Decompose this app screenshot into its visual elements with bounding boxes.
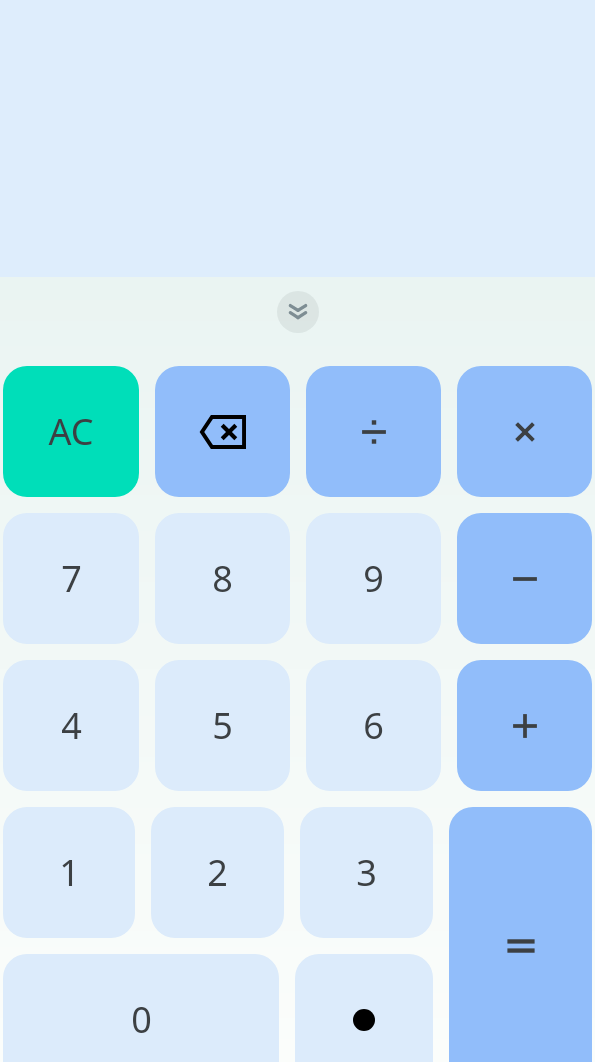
- button[interactable]: 2: [151, 807, 284, 938]
- button[interactable]: Decimal point: [295, 954, 433, 1062]
- staticText: 4: [61, 701, 82, 750]
- staticText: 5: [212, 701, 233, 750]
- staticText: 3: [356, 848, 377, 897]
- button[interactable]: Divide: [306, 366, 441, 497]
- button[interactable]: Expand history: [277, 291, 319, 333]
- staticText: 8: [212, 554, 233, 603]
- button[interactable]: 0: [3, 954, 279, 1062]
- button[interactable]: 9: [306, 513, 441, 644]
- button[interactable]: Multiply: [457, 366, 592, 497]
- button[interactable]: Backspace: [155, 366, 290, 497]
- staticText: 9: [363, 554, 384, 603]
- staticText: 2: [207, 848, 228, 897]
- button[interactable]: Plus: [457, 660, 592, 791]
- staticText: 6: [363, 701, 384, 750]
- button[interactable]: 8: [155, 513, 290, 644]
- staticText: 1: [59, 848, 80, 897]
- button[interactable]: 6: [306, 660, 441, 791]
- button[interactable]: Equals: [449, 807, 592, 1062]
- staticText: 0: [131, 995, 152, 1044]
- button[interactable]: 1: [3, 807, 135, 938]
- staticText: 7: [61, 554, 82, 603]
- button[interactable]: 4: [3, 660, 139, 791]
- button[interactable]: AC: [3, 366, 139, 497]
- button[interactable]: 7: [3, 513, 139, 644]
- staticText: AC: [48, 407, 94, 456]
- button[interactable]: 5: [155, 660, 290, 791]
- button[interactable]: Minus: [457, 513, 592, 644]
- button[interactable]: 3: [300, 807, 433, 938]
